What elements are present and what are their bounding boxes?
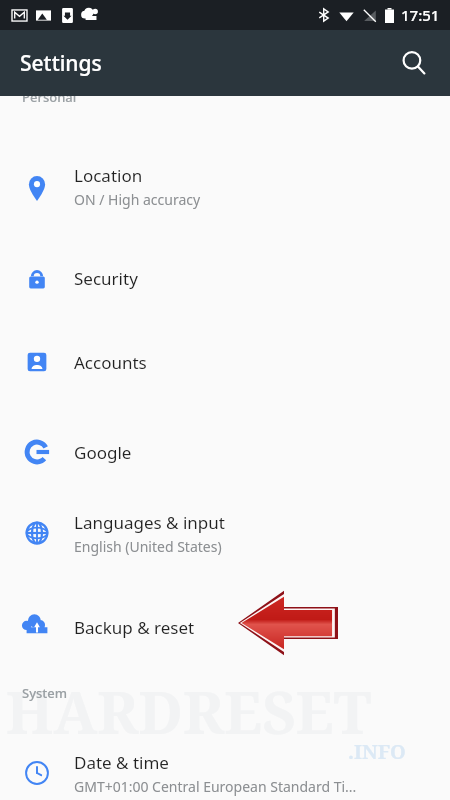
staticText: Personal	[22, 88, 77, 106]
button[interactable]: Backup & reset	[0, 595, 450, 659]
staticText: Google	[74, 441, 132, 464]
button[interactable]: Security	[0, 246, 450, 310]
button[interactable]: Languages & input	[0, 497, 450, 569]
staticText: Date & time	[74, 751, 169, 774]
button[interactable]: Date & time	[0, 737, 450, 800]
staticText: Accounts	[74, 351, 147, 374]
staticText: GMT+01:00 Central European Standard Ti..…	[74, 777, 357, 796]
staticText: Backup & reset	[74, 616, 195, 639]
button[interactable]: Location	[0, 150, 450, 222]
staticText: Languages & input	[74, 511, 225, 534]
button[interactable]: Google	[0, 420, 450, 484]
staticText: Security	[74, 267, 138, 290]
button[interactable]: Search	[390, 39, 438, 87]
staticText: ON / High accuracy	[74, 190, 201, 209]
staticText: .INFO	[348, 738, 406, 765]
staticText: 17:51	[401, 5, 440, 25]
staticText: HARDRESET	[6, 672, 372, 751]
staticText: Settings	[20, 49, 102, 78]
button[interactable]: Accounts	[0, 330, 450, 394]
staticText: System	[22, 684, 68, 702]
staticText: English (United States)	[74, 537, 222, 556]
staticText: Location	[74, 164, 143, 187]
